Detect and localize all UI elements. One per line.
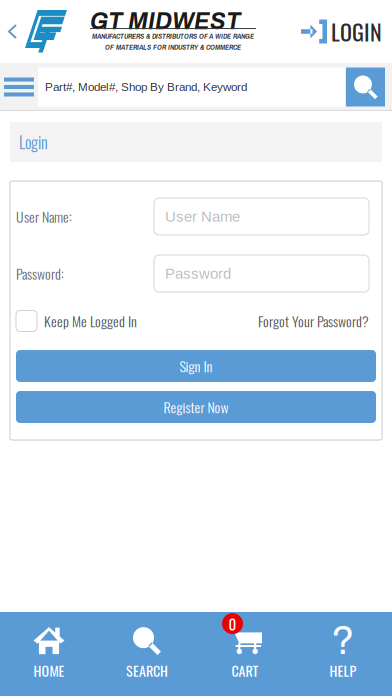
staticText: HELP bbox=[329, 660, 356, 681]
button[interactable]: Back bbox=[0, 0, 25, 63]
button[interactable]: HOME bbox=[0, 612, 98, 696]
staticText: Login bbox=[19, 130, 48, 154]
staticText: MANUFACTURERS & DISTRIBUTORS OF A WIDE R… bbox=[92, 31, 254, 41]
staticText: User Name bbox=[165, 208, 240, 225]
staticText: Password: bbox=[16, 263, 64, 284]
button[interactable]: LOGIN bbox=[301, 0, 392, 63]
staticText: HOME bbox=[33, 660, 64, 681]
button[interactable]: 0 bbox=[196, 612, 294, 696]
staticText: Keep Me Logged In bbox=[44, 311, 137, 331]
staticText: GT MIDWEST bbox=[90, 9, 241, 34]
button[interactable]: Menu bbox=[0, 63, 38, 111]
staticText: Part#, Model#, Shop By Brand, Keyword bbox=[45, 80, 247, 93]
staticText: LOGIN bbox=[331, 15, 382, 48]
staticText: Forgot Your Password? bbox=[258, 311, 369, 331]
staticText: 0 bbox=[228, 612, 236, 635]
staticText: Sign In bbox=[179, 356, 212, 376]
button[interactable]: ? bbox=[294, 612, 392, 696]
staticText: ? bbox=[331, 619, 354, 662]
staticText: CART bbox=[231, 660, 258, 681]
staticText: User Name: bbox=[16, 206, 72, 227]
button[interactable]: Forgot Your Password? bbox=[258, 310, 376, 332]
button[interactable]: Search bbox=[346, 67, 385, 106]
staticText: Password bbox=[165, 265, 231, 282]
staticText: Register Now bbox=[163, 397, 228, 417]
button[interactable]: Sign In bbox=[16, 350, 376, 382]
staticText: SEARCH bbox=[126, 660, 168, 681]
button[interactable]: Register Now bbox=[16, 391, 376, 423]
button[interactable]: SEARCH bbox=[98, 612, 196, 696]
button[interactable]: Keep Me Logged In bbox=[16, 310, 137, 332]
staticText: OF MATERIALS FOR INDUSTRY & COMMERCE bbox=[105, 42, 241, 52]
